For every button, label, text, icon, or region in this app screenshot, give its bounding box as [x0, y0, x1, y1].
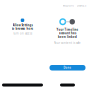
- staticText: Your Timeline: [56, 28, 78, 31]
- staticText: account has: [59, 31, 76, 35]
- button[interactable]: Devices: [77, 4, 86, 7]
- staticText: Your content is safe: [54, 41, 81, 45]
- staticText: Account: [63, 4, 74, 7]
- staticText: to browse here: [11, 27, 33, 30]
- staticText: Done: [63, 66, 71, 69]
- button[interactable]: Account: [63, 4, 74, 7]
- button[interactable]: Done: [49, 65, 85, 70]
- staticText: Allow Settings: [12, 23, 32, 27]
- staticText: been linked: [58, 35, 77, 39]
- staticText: Turn on access: [13, 32, 32, 35]
- staticText: Devices: [77, 4, 86, 7]
